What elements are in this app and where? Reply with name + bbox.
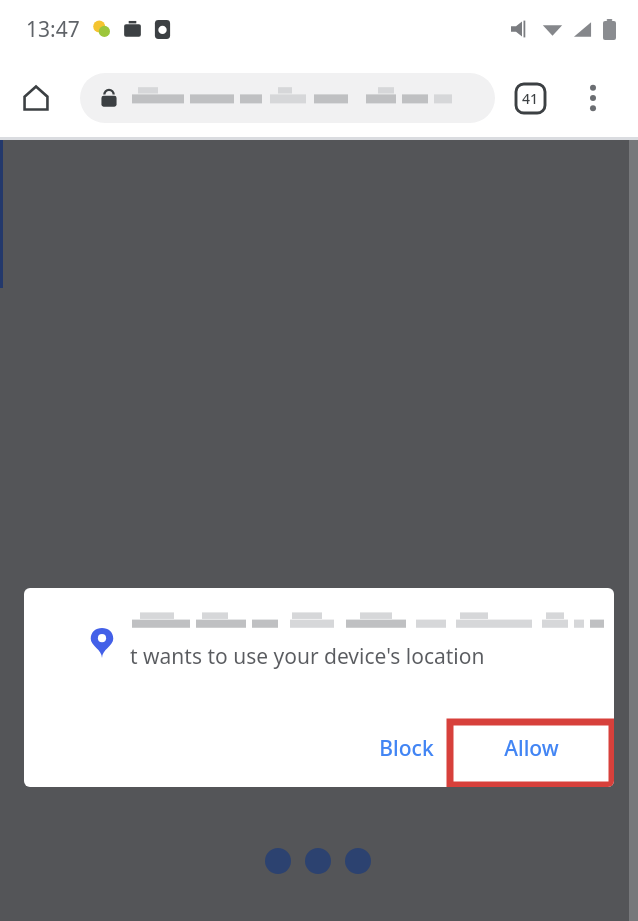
button[interactable]: Home bbox=[10, 72, 62, 124]
button[interactable]: More options bbox=[570, 75, 616, 121]
staticText: 13:47 bbox=[26, 15, 80, 44]
staticText: t wants to use your device's location bbox=[130, 642, 485, 671]
staticText: 41 bbox=[522, 89, 539, 108]
button[interactable]: Tabs, 41 open bbox=[506, 74, 554, 122]
button[interactable]: Address bar bbox=[80, 73, 495, 123]
button[interactable]: Block bbox=[352, 720, 460, 776]
staticText: Block bbox=[379, 734, 434, 763]
button[interactable]: Allow bbox=[448, 720, 614, 787]
staticText: Allow bbox=[504, 734, 559, 763]
